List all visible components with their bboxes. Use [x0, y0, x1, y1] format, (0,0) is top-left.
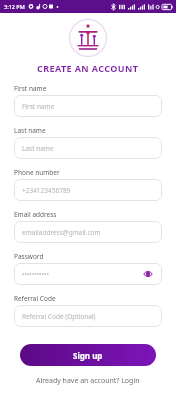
staticText: Last name	[14, 126, 46, 135]
staticText: First name	[14, 84, 47, 93]
button[interactable]: +234123456789	[14, 179, 162, 201]
button[interactable]: •••••••••••	[14, 263, 162, 285]
staticText: Referral Code	[14, 294, 56, 303]
staticText: Already have an account? Login	[36, 376, 140, 386]
staticText: Referral Code (Optional)	[22, 312, 154, 321]
button[interactable]: Show password	[142, 268, 154, 280]
staticText: Phone number	[14, 168, 60, 177]
staticText: +234123456789	[22, 186, 154, 195]
staticText: Email address	[14, 210, 57, 219]
staticText: CREATE AN ACCOUNT	[37, 62, 139, 74]
staticText: Sign up	[73, 350, 103, 361]
button[interactable]: First name	[14, 95, 162, 117]
button[interactable]: Last name	[14, 137, 162, 159]
staticText: 3:12 PM	[4, 3, 25, 10]
button[interactable]: Already have an account? Login	[36, 376, 140, 386]
staticText: First name	[22, 102, 154, 111]
button[interactable]: emailaddress@gmail.com	[14, 221, 162, 243]
button[interactable]: Sign up	[20, 344, 156, 366]
staticText: Last name	[22, 144, 154, 153]
staticText: emailaddress@gmail.com	[22, 228, 154, 237]
staticText: Password	[14, 252, 44, 261]
staticText: •••••••••••	[22, 270, 142, 279]
button[interactable]: Referral Code (Optional)	[14, 305, 162, 327]
